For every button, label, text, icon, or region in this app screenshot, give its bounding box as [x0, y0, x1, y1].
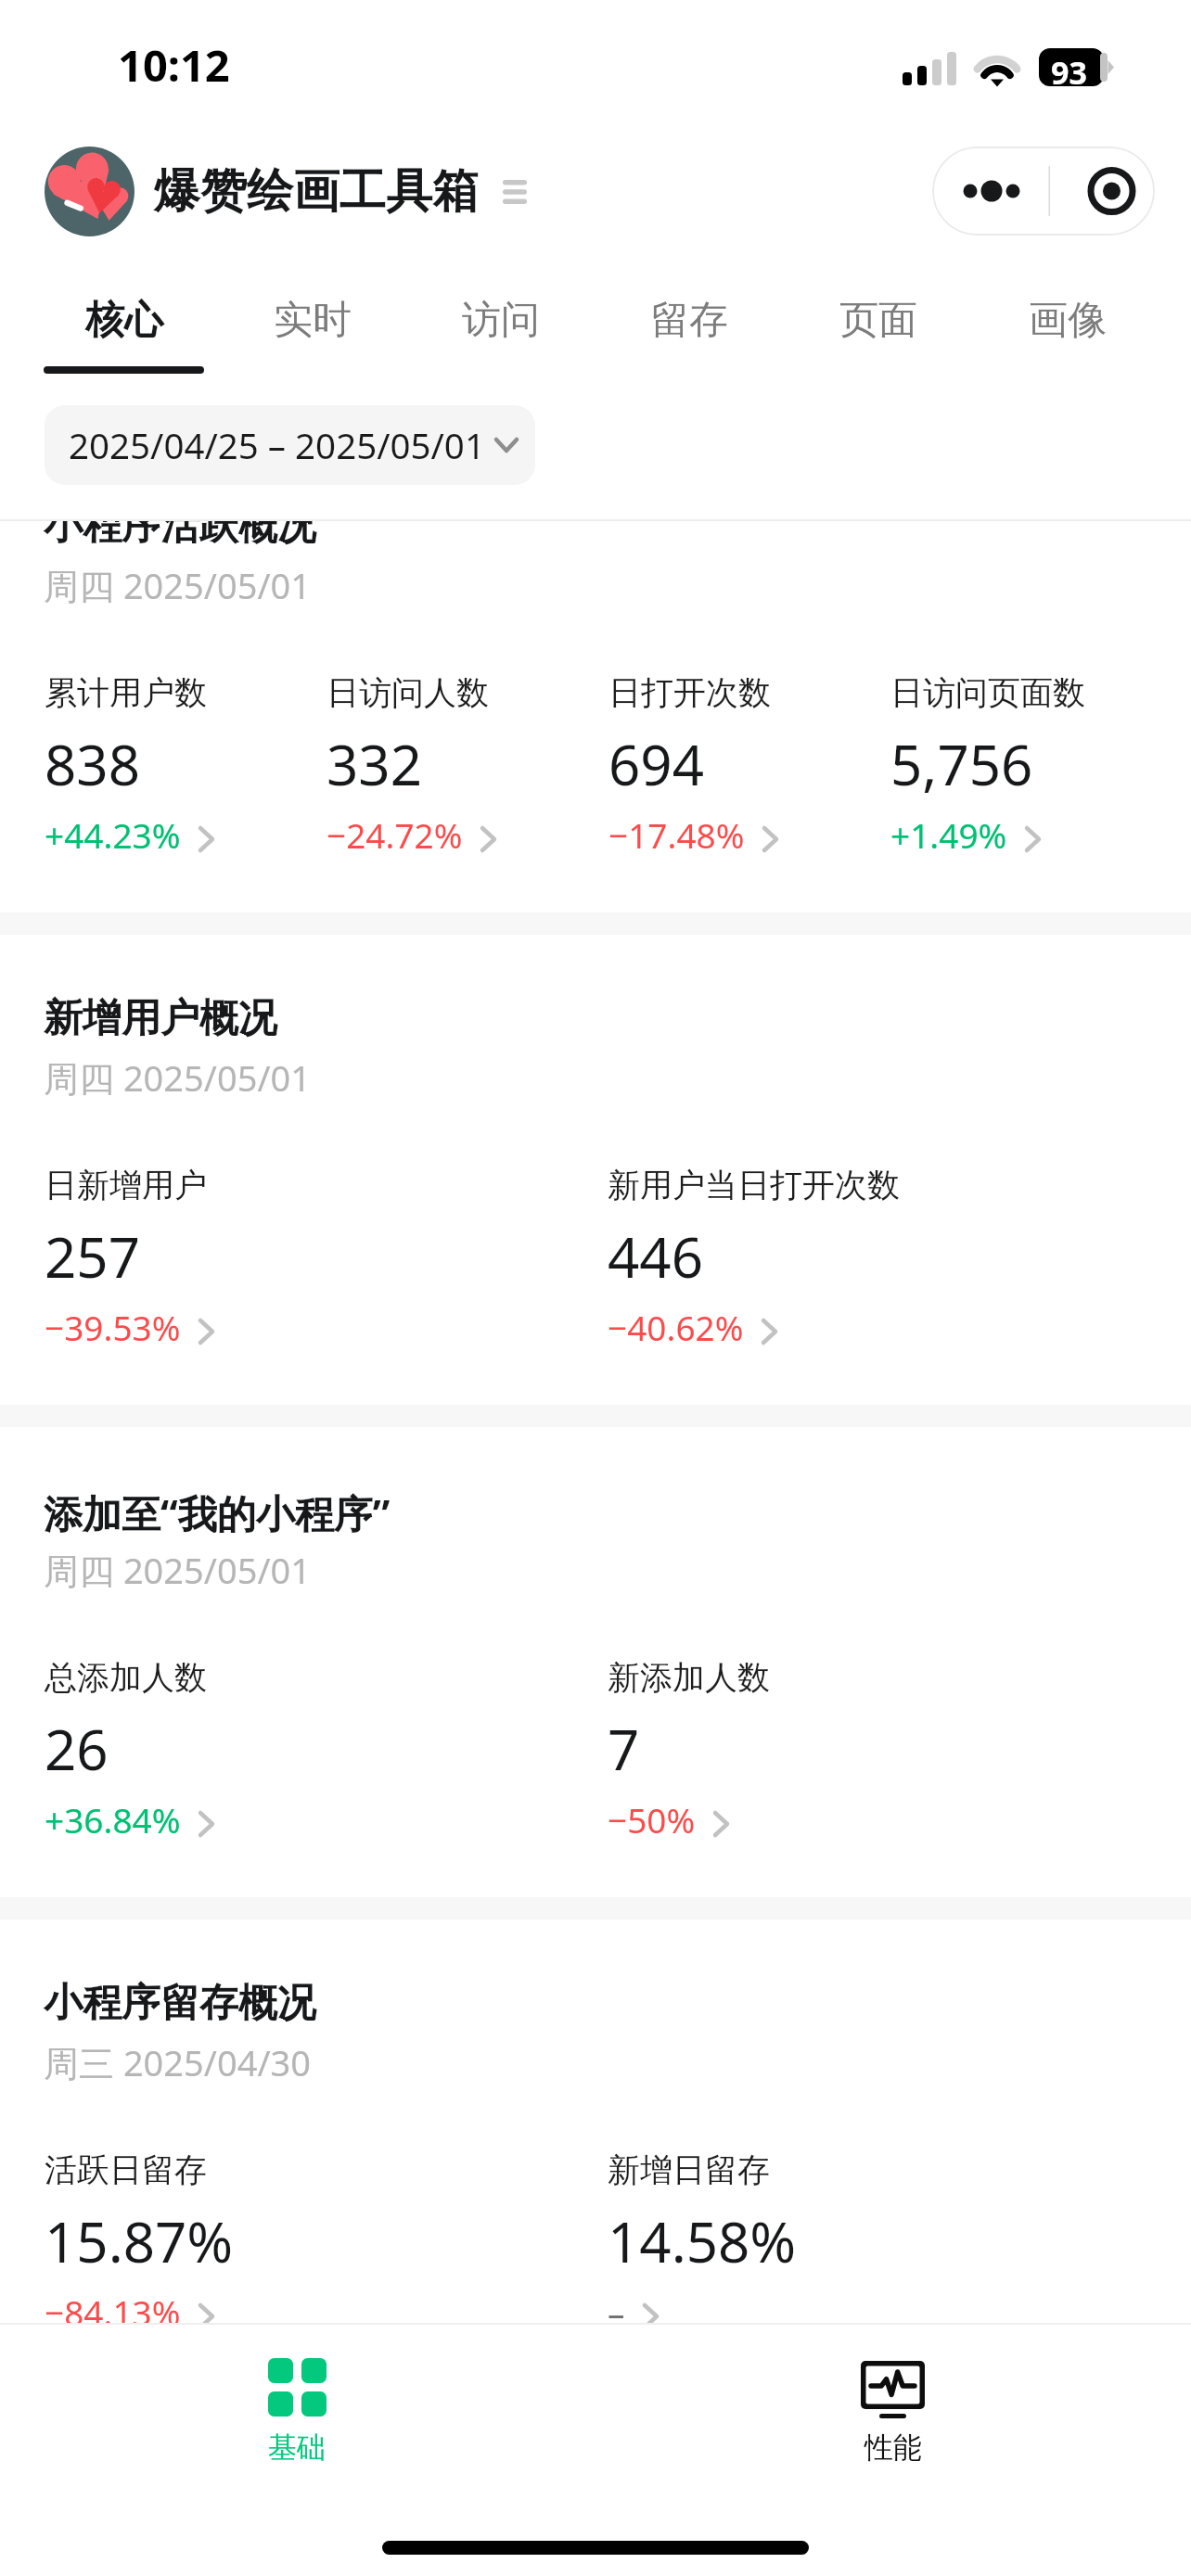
staticText: 周三 2025/04/30: [44, 2038, 312, 2086]
button[interactable]: 基础: [148, 2325, 445, 2506]
button[interactable]: 新添加人数: [608, 1657, 770, 1733]
staticText: −39.53%: [45, 1304, 181, 1350]
staticText: 日访问人数: [327, 672, 489, 713]
staticText: 新增日留存: [608, 2149, 770, 2190]
button[interactable]: 新增日留存: [608, 2149, 797, 2225]
staticText: 15.87%: [45, 2203, 234, 2279]
staticText: 332: [327, 726, 422, 802]
staticText: 5,756: [890, 726, 1033, 802]
button[interactable]: 日访问页面数: [890, 672, 1085, 748]
staticText: 446: [608, 1218, 703, 1294]
other: Mini program info: [503, 180, 527, 204]
button[interactable]: 新用户当日打开次数: [608, 1165, 900, 1241]
staticText: +1.49%: [890, 811, 1007, 858]
staticText: 小程序留存概况: [44, 1979, 316, 2028]
staticText: 实时: [274, 296, 352, 345]
staticText: 14.58%: [608, 2203, 797, 2279]
button[interactable]: Close mini program: [1048, 147, 1155, 236]
staticText: 累计用户数: [45, 672, 207, 713]
staticText: 周四 2025/05/01: [44, 1546, 312, 1594]
button[interactable]: 日打开次数: [608, 672, 776, 748]
staticText: 日访问页面数: [890, 672, 1085, 713]
staticText: 新增用户概况: [44, 994, 277, 1043]
button[interactable]: 爆赞绘画工具箱: [45, 147, 527, 236]
staticText: 性能: [864, 2429, 922, 2466]
staticText: 93: [1051, 51, 1087, 89]
staticText: 小程序活跃概况: [44, 521, 316, 551]
staticText: −84.13%: [45, 2289, 181, 2324]
staticText: 活跃日留存: [45, 2149, 207, 2190]
staticText: 核心: [85, 296, 163, 345]
button[interactable]: 总添加人数: [45, 1657, 212, 1733]
button[interactable]: 实时: [218, 260, 406, 374]
button[interactable]: 活跃日留存: [45, 2149, 234, 2225]
staticText: −24.72%: [327, 811, 463, 858]
staticText: –: [608, 2289, 625, 2324]
button[interactable]: 2025/04/25 – 2025/05/01: [45, 405, 535, 485]
button[interactable]: 访问: [406, 260, 595, 374]
staticText: 总添加人数: [45, 1657, 207, 1698]
staticText: 257: [45, 1218, 140, 1294]
staticText: 694: [608, 726, 704, 802]
staticText: 2025/04/25 – 2025/05/01: [69, 421, 485, 469]
staticText: 日打开次数: [608, 672, 771, 713]
button[interactable]: 日访问人数: [327, 672, 494, 748]
staticText: 新用户当日打开次数: [608, 1165, 900, 1205]
staticText: 页面: [839, 296, 917, 345]
staticText: +36.84%: [45, 1796, 181, 1843]
staticText: −50%: [608, 1796, 696, 1843]
staticText: 访问: [462, 296, 540, 345]
staticText: −40.62%: [608, 1304, 744, 1350]
button[interactable]: 累计用户数: [45, 672, 212, 748]
button[interactable]: 性能: [745, 2325, 1042, 2506]
staticText: 26: [45, 1711, 109, 1787]
staticText: 画像: [1029, 296, 1107, 345]
staticText: +44.23%: [45, 811, 181, 858]
staticText: 留存: [650, 296, 728, 345]
staticText: 新添加人数: [608, 1657, 770, 1698]
button[interactable]: 画像: [973, 260, 1162, 374]
staticText: 周四 2025/05/01: [44, 1053, 312, 1102]
staticText: 爆赞绘画工具箱: [154, 162, 479, 221]
staticText: −17.48%: [608, 811, 745, 858]
staticText: 添加至“我的小程序”: [44, 1486, 391, 1539]
staticText: 7: [608, 1711, 640, 1787]
staticText: 10:12: [118, 35, 230, 95]
button[interactable]: 留存: [595, 260, 784, 374]
button[interactable]: More options: [932, 147, 1048, 236]
button[interactable]: 页面: [784, 260, 973, 374]
staticText: 日新增用户: [45, 1165, 207, 1205]
button[interactable]: 日新增用户: [45, 1165, 212, 1241]
staticText: 基础: [268, 2429, 326, 2466]
staticText: 周四 2025/05/01: [44, 561, 312, 609]
staticText: 838: [45, 726, 140, 802]
button[interactable]: 核心: [30, 260, 218, 374]
